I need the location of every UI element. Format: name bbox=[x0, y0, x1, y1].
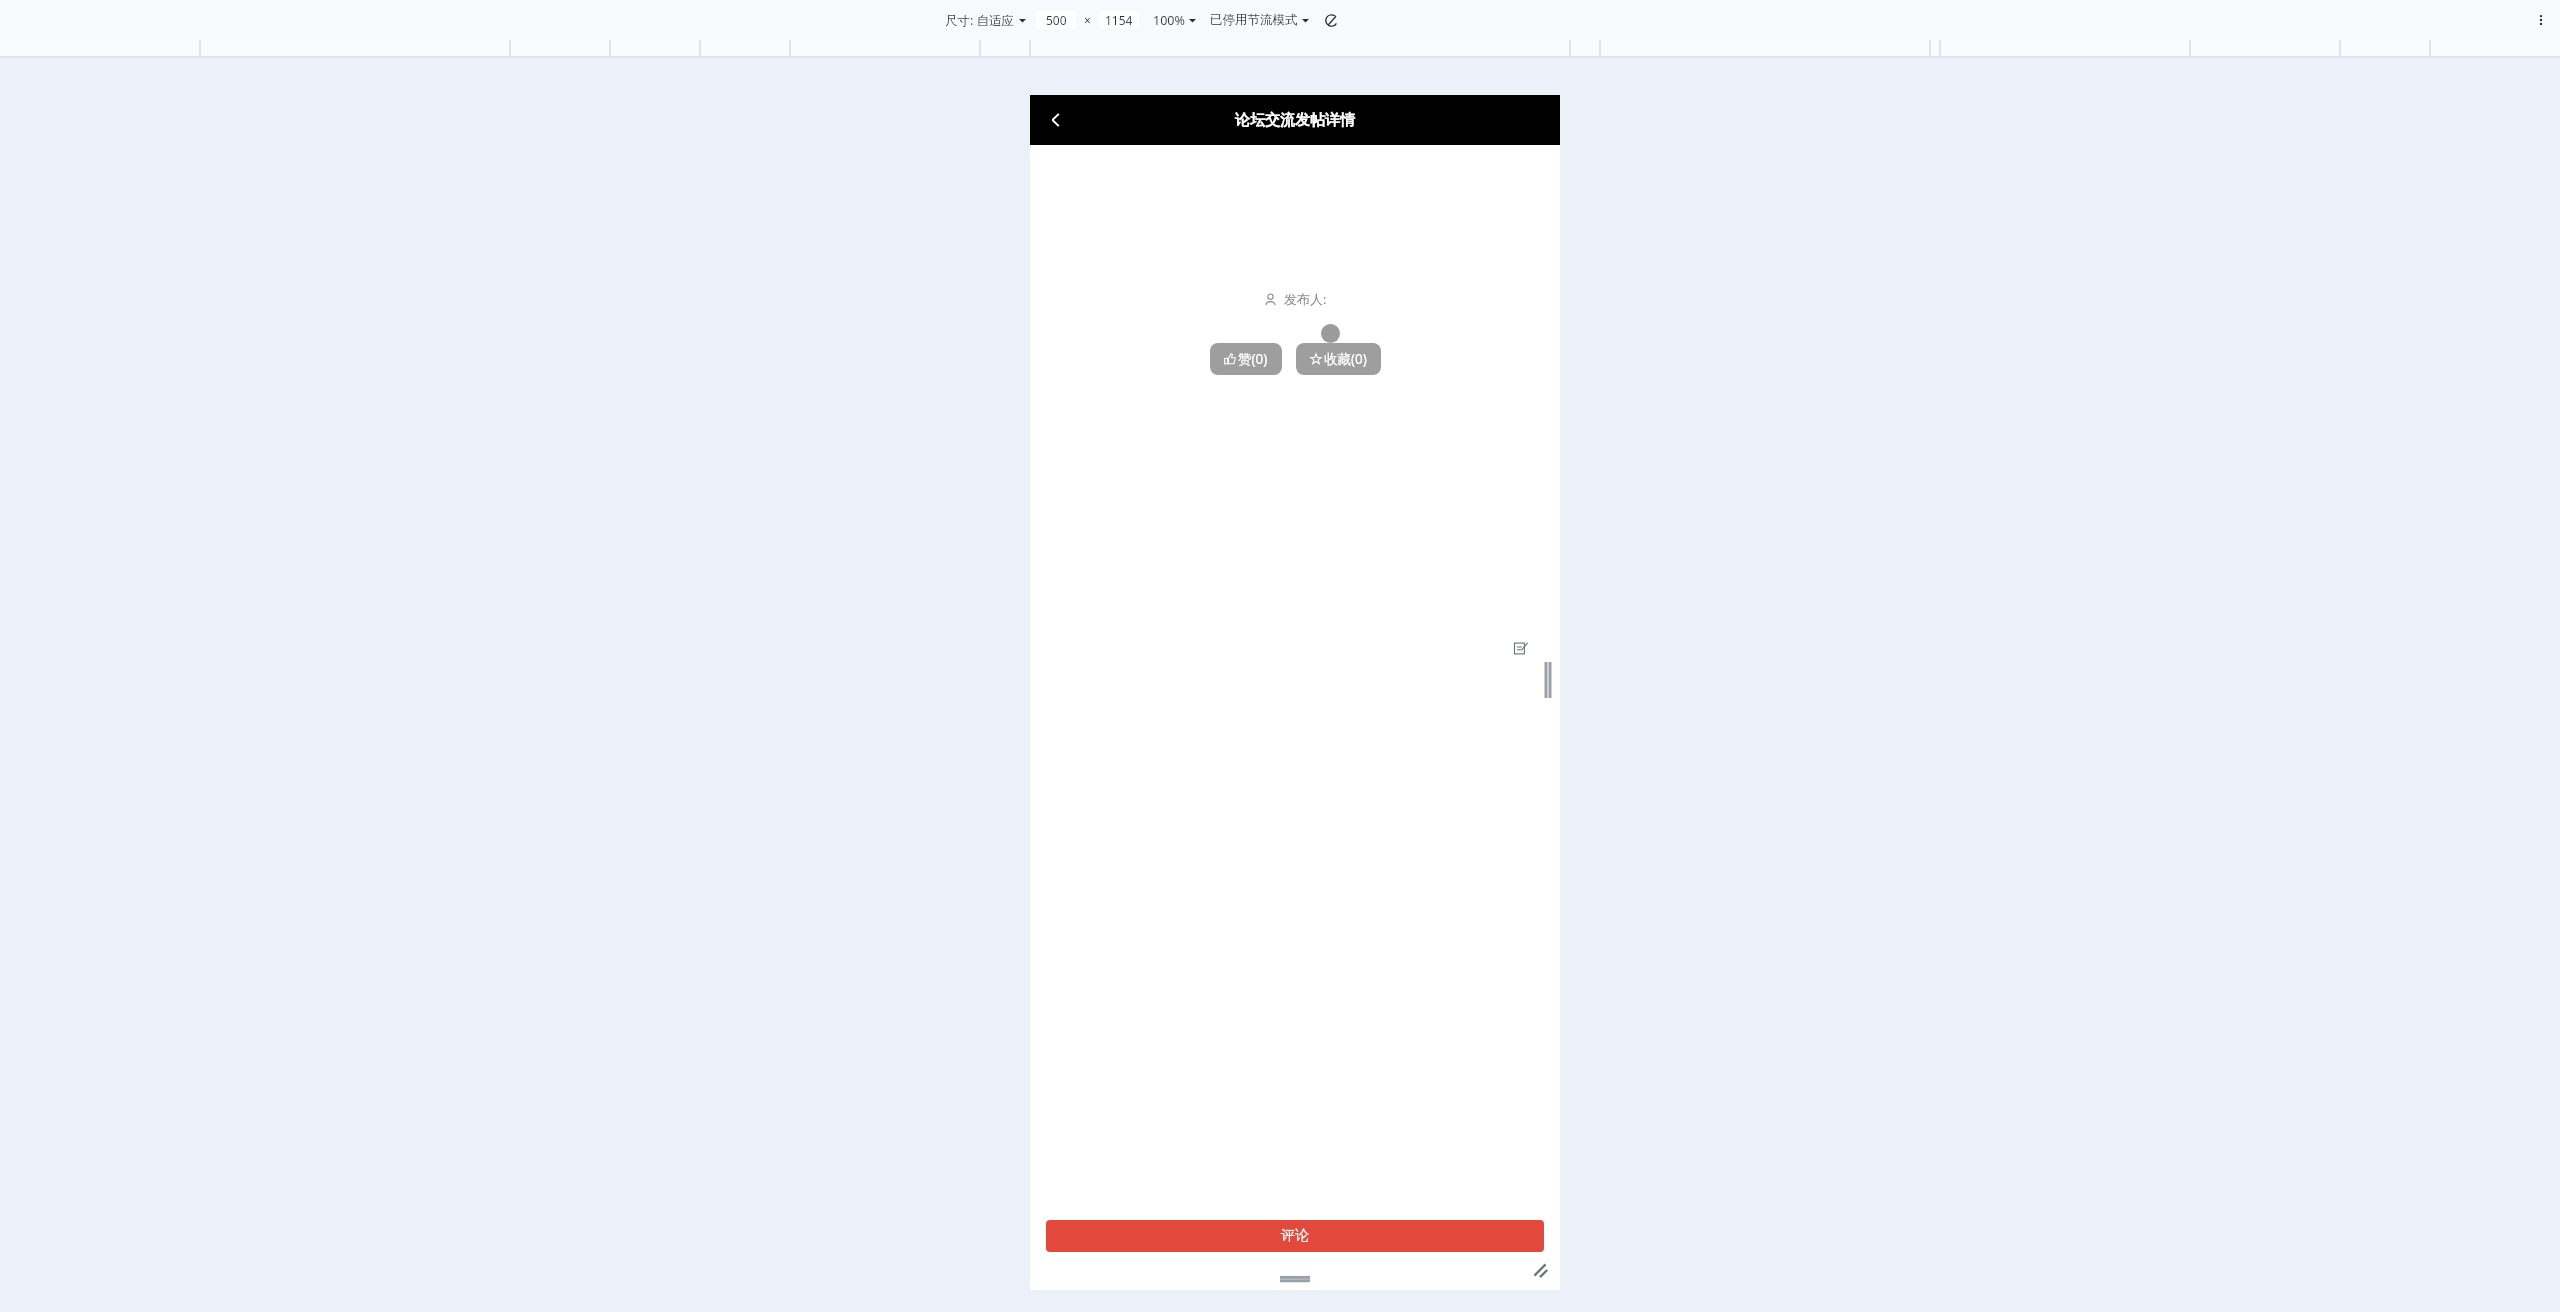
staticText: 发布人: bbox=[1284, 290, 1327, 308]
button[interactable]: Write comment bbox=[1500, 628, 1540, 668]
button[interactable]: 1154 bbox=[1099, 11, 1139, 29]
button[interactable]: Resize bbox=[1528, 1258, 1552, 1282]
button[interactable]: 500 bbox=[1036, 11, 1076, 29]
staticText: 收藏(0) bbox=[1324, 350, 1367, 368]
staticText: 尺寸: 自适应 bbox=[945, 12, 1015, 29]
staticText: 100% bbox=[1153, 12, 1185, 29]
button[interactable]: Rotate bbox=[1321, 10, 1341, 30]
button[interactable]: 赞(0) bbox=[1210, 343, 1282, 375]
button[interactable]: Back bbox=[1034, 98, 1078, 142]
button[interactable]: 评论 bbox=[1046, 1220, 1544, 1252]
button[interactable]: 收藏(0) bbox=[1296, 343, 1381, 375]
staticText: 论坛交流发帖详情 bbox=[1235, 111, 1355, 130]
staticText: 赞(0) bbox=[1238, 350, 1268, 368]
staticText: 评论 bbox=[1281, 1227, 1309, 1245]
staticText: 500 bbox=[1046, 12, 1067, 28]
staticText: 已停用节流模式 bbox=[1210, 12, 1298, 28]
button[interactable]: More options bbox=[2530, 9, 2552, 31]
staticText: 1154 bbox=[1105, 12, 1133, 28]
staticText: × bbox=[1084, 12, 1091, 28]
button[interactable]: Resize width bbox=[1538, 655, 1558, 705]
